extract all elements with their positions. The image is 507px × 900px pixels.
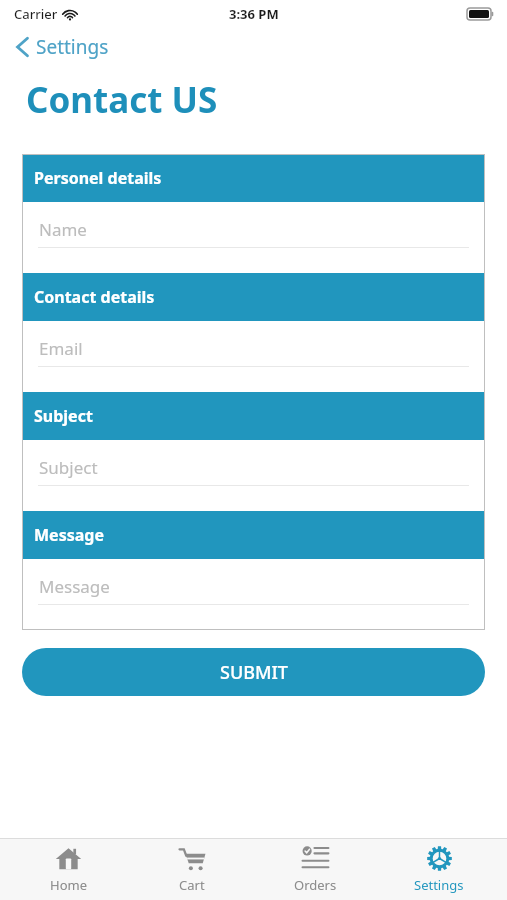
button[interactable]: SUBMIT [22,648,485,696]
staticText: Home [50,876,87,894]
staticText: SUBMIT [220,660,288,685]
staticText: Settings [414,876,464,894]
staticText: Orders [294,876,337,894]
button[interactable]: Message [22,559,485,630]
staticText: Subject [34,405,93,427]
staticText: Contact US [26,76,218,124]
staticText: Carrier [14,5,58,23]
staticText: Subject [39,456,98,479]
staticText: Settings [36,34,109,60]
staticText: Personel details [34,167,162,189]
button[interactable]: Settings [384,840,494,899]
staticText: 3:36 PM [229,5,279,23]
button[interactable]: Orders [260,840,370,899]
staticText: Message [34,524,104,546]
staticText: Cart [179,876,205,894]
staticText: Email [39,337,83,360]
button[interactable]: Subject [22,440,485,511]
button[interactable]: Email [22,321,485,392]
staticText: Message [39,575,110,598]
button[interactable]: Cart [137,840,247,899]
button[interactable]: Settings [10,28,121,66]
button[interactable]: Home [13,840,123,899]
button[interactable]: Name [22,202,485,273]
staticText: Contact details [34,286,155,308]
staticText: Name [39,218,87,241]
